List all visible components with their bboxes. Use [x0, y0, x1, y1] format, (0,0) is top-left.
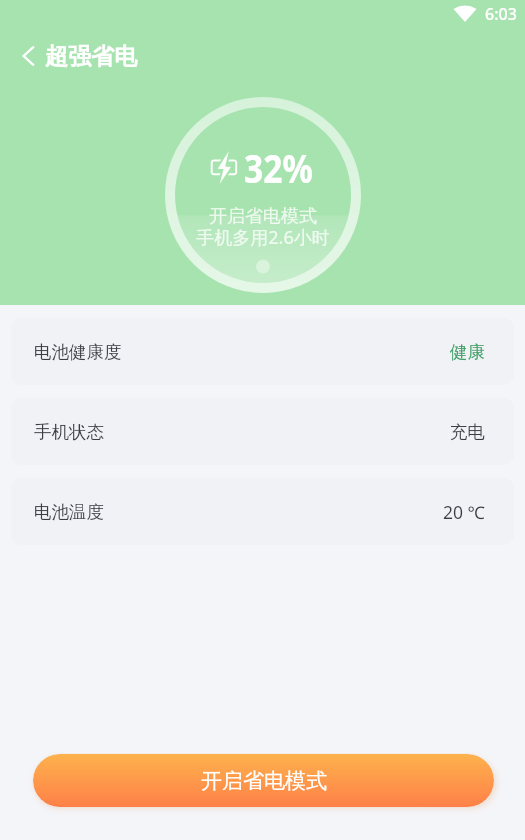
staticText: 开启省电模式 手机多用2.6小时	[196, 205, 330, 250]
staticText: 6:03	[485, 3, 517, 25]
staticText: 20 ℃	[443, 500, 485, 524]
staticText: 充电	[450, 421, 485, 443]
staticText: 开启省电模式	[201, 768, 327, 794]
button[interactable]: Back	[0, 33, 50, 79]
staticText: 电池温度	[34, 501, 104, 523]
button[interactable]: 电池温度	[11, 478, 514, 545]
button[interactable]: 开启省电模式	[33, 754, 494, 807]
staticText: 电池健康度	[34, 341, 122, 363]
button[interactable]: 手机状态	[11, 398, 514, 465]
staticText: 健康	[450, 341, 485, 363]
staticText: 超强省电	[45, 42, 137, 71]
button[interactable]: 电池健康度	[11, 318, 514, 385]
staticText: 手机状态	[34, 421, 104, 443]
staticText: 32%	[244, 140, 313, 194]
